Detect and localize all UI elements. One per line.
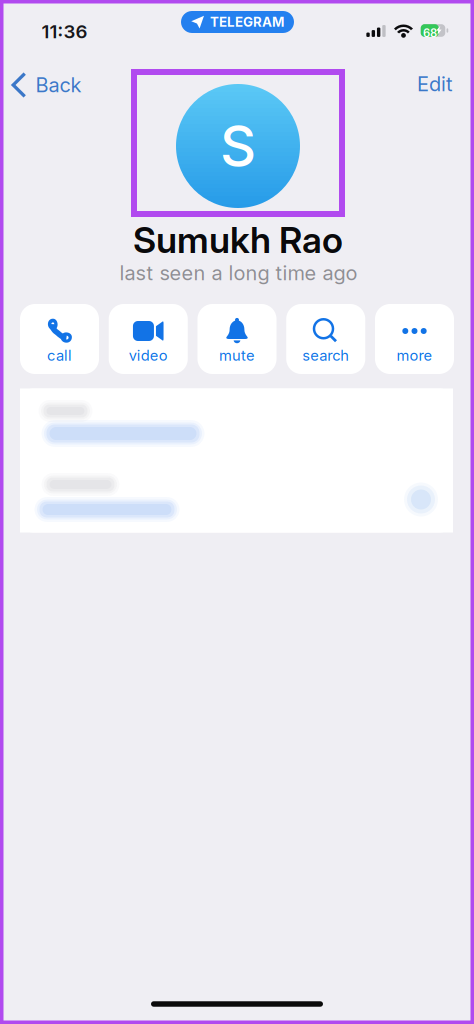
button[interactable]: more <box>375 304 454 374</box>
button[interactable] <box>20 388 453 460</box>
staticText: TELEGRAM <box>210 14 284 30</box>
staticText: Edit <box>417 72 453 96</box>
button[interactable]: Back <box>0 63 93 107</box>
staticText: 68 <box>423 26 437 40</box>
button[interactable]: Edit <box>401 62 469 106</box>
staticText: search <box>302 347 349 364</box>
button[interactable]: mute <box>197 304 276 374</box>
staticText: Back <box>35 73 81 97</box>
staticText: Sumukh Rao <box>133 218 343 262</box>
staticText: call <box>47 347 72 364</box>
button[interactable]: search <box>286 304 365 374</box>
staticText: S <box>220 112 256 180</box>
staticText: more <box>396 347 432 364</box>
button[interactable]: video <box>109 304 188 374</box>
button[interactable] <box>20 462 453 532</box>
staticText: video <box>129 347 168 364</box>
staticText: mute <box>219 347 255 364</box>
button[interactable]: call <box>20 304 99 374</box>
staticText: 11:36 <box>41 20 87 43</box>
staticText: last seen a long time ago <box>119 261 357 285</box>
